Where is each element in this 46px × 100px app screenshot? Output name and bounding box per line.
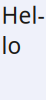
- staticText: Hello: [1, 0, 44, 60]
